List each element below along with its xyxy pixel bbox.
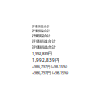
staticText: 評価損益合計 [32,25,50,28]
staticText: 評価損益合計 [32,39,56,44]
staticText: 1,992,839円 [32,57,60,63]
staticText: 評価損益合計 [32,29,50,33]
staticText: 1,992,839円 [32,51,52,56]
staticText: 評価損益合計 [32,45,56,50]
staticText: 評価損益合計 [32,34,50,38]
staticText: +986,797円 (+98.15%) [32,64,67,69]
staticText: +986,797円 (+98.15%) [32,70,68,75]
